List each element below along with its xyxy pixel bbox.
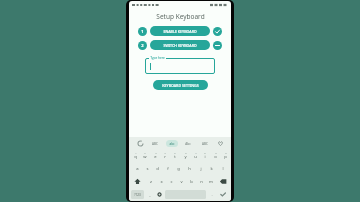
staticText: 1 (141, 29, 144, 34)
staticText: w (143, 154, 147, 160)
staticText: abc (169, 142, 175, 146)
button[interactable]: Backspace (217, 176, 229, 187)
button[interactable]: z (146, 176, 155, 187)
button[interactable]: c (167, 176, 175, 187)
staticText: Abc (185, 142, 191, 146)
staticText: u (194, 154, 197, 160)
staticText: g (177, 166, 180, 172)
button[interactable]: j (196, 163, 205, 174)
button[interactable]: 2 (141, 150, 149, 161)
button[interactable]: , (146, 190, 154, 199)
staticText: 6 (185, 151, 187, 154)
staticText: o (214, 154, 217, 160)
button[interactable]: KEYBOARD SETTINGS (153, 80, 208, 90)
button[interactable]: ?123 (131, 190, 144, 199)
staticText: Type here (150, 56, 165, 60)
staticText: ENABLE KEYBOARD (163, 29, 197, 34)
staticText: a (136, 166, 139, 172)
staticText: l (222, 166, 224, 172)
button[interactable]: Abc (182, 140, 194, 147)
button[interactable]: g (174, 163, 183, 174)
staticText: 2 (141, 43, 144, 48)
staticText: 3 (155, 151, 157, 154)
button[interactable]: Type here (145, 56, 215, 74)
button[interactable]: 1 (131, 150, 139, 161)
button[interactable]: b (187, 176, 195, 187)
button[interactable]: 0 (221, 150, 229, 161)
staticText: m (209, 179, 213, 185)
staticText: b (190, 179, 193, 185)
button[interactable]: 3 (151, 150, 159, 161)
button[interactable]: Emoji (156, 190, 163, 199)
button[interactable]: abc (166, 140, 178, 147)
staticText: j (200, 166, 202, 172)
staticText: . (211, 192, 213, 198)
staticText: v (180, 179, 183, 185)
button[interactable]: 9 (211, 150, 219, 161)
staticText: 9 (215, 151, 217, 154)
button[interactable]: h (185, 163, 194, 174)
staticText: KEYBOARD SETTINGS (162, 83, 199, 88)
button[interactable]: 5 (171, 150, 179, 161)
staticText: s (146, 166, 149, 172)
button[interactable]: 4 (161, 150, 169, 161)
button[interactable]: Enter (217, 190, 229, 199)
staticText: i (204, 154, 206, 160)
staticText: SWITCH KEYBOARD (163, 43, 197, 48)
button[interactable]: d (153, 163, 161, 174)
button[interactable]: Favorite (216, 139, 224, 147)
staticText: , (149, 192, 151, 198)
staticText: ABC (152, 142, 158, 146)
staticText: r (164, 154, 166, 160)
button[interactable]: s (143, 163, 151, 174)
staticText: 5 (174, 151, 176, 154)
button[interactable]: ENABLE KEYBOARD (150, 26, 210, 36)
staticText: f (167, 166, 169, 172)
staticText: 0 (225, 151, 227, 154)
button[interactable]: 7 (191, 150, 199, 161)
button[interactable]: 6 (181, 150, 189, 161)
button[interactable]: SWITCH KEYBOARD (150, 40, 210, 50)
button[interactable]: n (197, 176, 205, 187)
button[interactable]: k (207, 163, 216, 174)
staticText: 8 (204, 151, 206, 154)
staticText: d (156, 166, 159, 172)
button[interactable]: x (157, 176, 165, 187)
staticText: z (150, 179, 152, 185)
staticText: ABC (202, 142, 208, 146)
other: Completed (213, 27, 222, 36)
staticText: p (224, 154, 227, 160)
button[interactable]: m (207, 176, 215, 187)
button[interactable]: ABC (149, 140, 161, 147)
staticText: Setup Keyboard (156, 12, 205, 21)
button[interactable]: Google (136, 139, 144, 147)
button[interactable]: ABC (199, 140, 211, 147)
staticText: 7 (195, 151, 197, 154)
button[interactable]: v (177, 176, 185, 187)
staticText: h (188, 166, 191, 172)
staticText: t (174, 154, 176, 160)
button[interactable]: a (133, 163, 141, 174)
staticText: k (210, 166, 213, 172)
staticText: 1 (135, 151, 137, 154)
staticText: c (170, 179, 173, 185)
staticText: q (134, 154, 137, 160)
button[interactable]: l (218, 163, 227, 174)
button[interactable]: f (163, 163, 172, 174)
staticText: 4 (164, 151, 166, 154)
staticText: y (184, 154, 187, 160)
button[interactable]: 8 (201, 150, 209, 161)
staticText: ?123 (134, 193, 141, 197)
button[interactable]: Shift (131, 176, 144, 187)
staticText: x (160, 179, 163, 185)
staticText: n (200, 179, 203, 185)
staticText: 2 (144, 151, 146, 154)
other: Not completed (213, 41, 222, 50)
staticText: e (154, 154, 157, 160)
